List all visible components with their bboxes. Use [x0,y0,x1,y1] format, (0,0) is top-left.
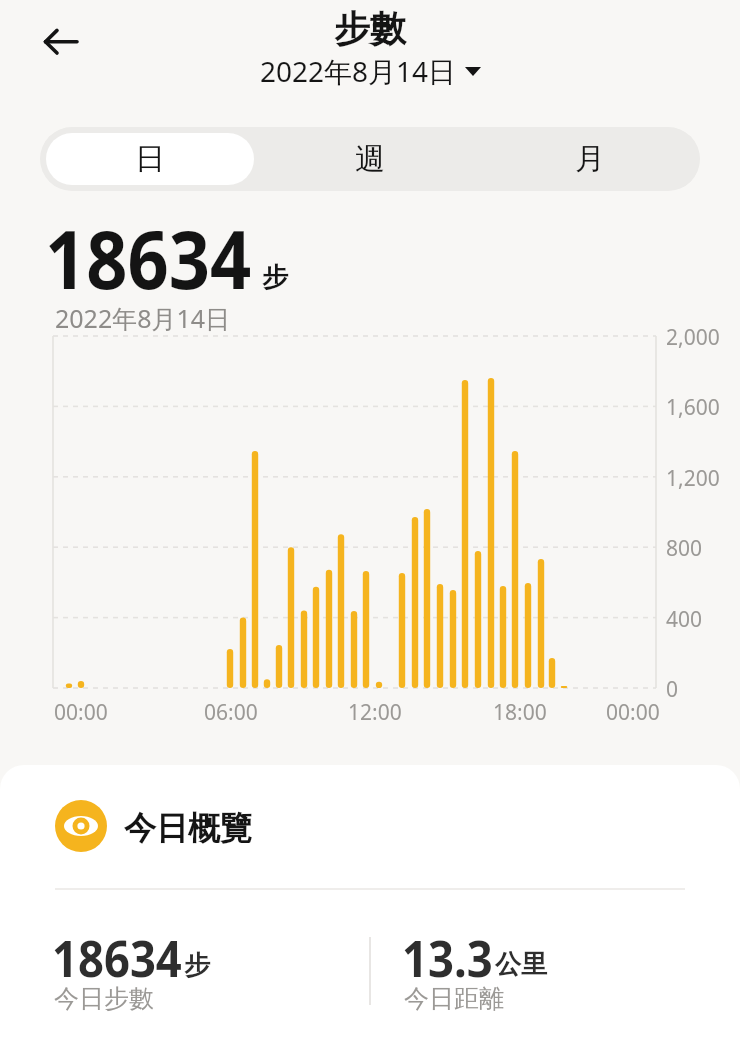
staticText: 步 [184,949,210,982]
staticText: 800 [666,534,703,563]
staticText: 今日距離 [404,983,504,1014]
staticText: 2022年8月14日 [55,301,231,335]
staticText: 1,200 [666,464,720,493]
button[interactable]: 日 [46,133,254,185]
staticText: 00:00 [606,698,660,727]
staticText: 18:00 [493,698,547,727]
staticText: 18634 [52,922,182,991]
staticText: 18634 [45,202,251,312]
staticText: 步數 [334,6,406,51]
staticText: 步 [262,261,288,294]
staticText: 1,600 [666,393,720,422]
staticText: 今日步數 [54,983,154,1014]
staticText: 12:00 [348,698,402,727]
staticText: 00:00 [54,698,108,727]
staticText: 日 [135,140,165,178]
button[interactable]: 週 [260,127,480,191]
staticText: 13.3 [402,922,493,991]
staticText: 06:00 [204,698,258,727]
button[interactable]: 月 [480,127,700,191]
staticText: 月 [575,140,605,178]
staticText: 2,000 [666,323,720,352]
button[interactable] [55,800,107,852]
staticText: 0 [666,675,679,704]
staticText: 2022年8月14日 [260,52,457,90]
staticText: 400 [666,605,703,634]
button[interactable]: 2022年8月14日 [260,52,481,90]
staticText: 公里 [495,948,547,981]
staticText: 今日概覽 [124,808,252,848]
button[interactable] [44,27,78,57]
staticText: 週 [355,140,385,178]
